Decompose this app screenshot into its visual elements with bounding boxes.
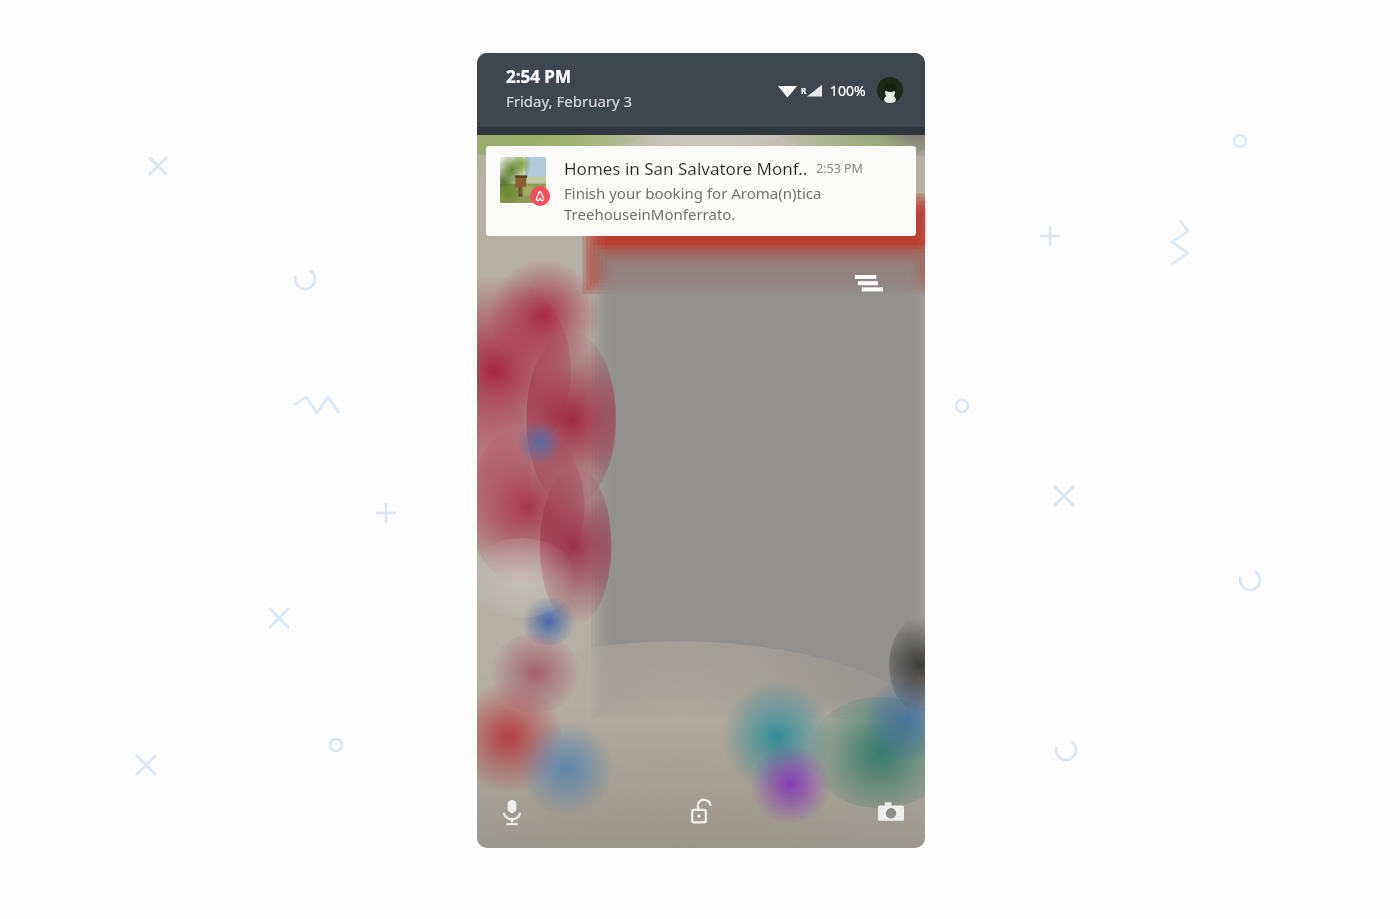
- staticText: Homes in San Salvatore Monf..: [564, 157, 808, 180]
- staticText: 2:54 PM: [506, 65, 571, 88]
- button[interactable]: Account: [877, 77, 903, 103]
- button[interactable]: Unlock: [626, 776, 776, 848]
- button[interactable]: Voice assist: [477, 776, 626, 848]
- button[interactable]: Camera: [776, 776, 925, 848]
- staticText: Friday, February 3: [506, 91, 633, 111]
- staticText: 2:53 PM: [816, 160, 863, 177]
- staticText: Finish your booking for Aroma(n)tica Tre…: [564, 183, 822, 225]
- staticText: R: [801, 85, 807, 96]
- staticText: 100%: [830, 81, 866, 100]
- button[interactable]: Notification settings: [847, 263, 891, 307]
- button[interactable]: Homes in San Salvatore Monf..: [486, 146, 916, 236]
